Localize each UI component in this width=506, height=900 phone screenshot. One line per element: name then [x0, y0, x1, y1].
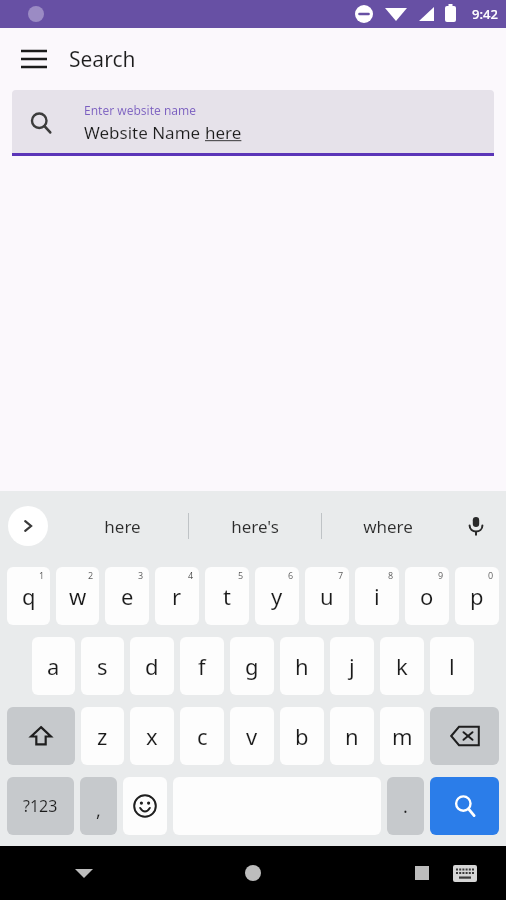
staticText: here's — [231, 515, 279, 538]
staticText: p — [470, 581, 484, 611]
button[interactable]: Search — [430, 777, 499, 835]
button[interactable]: ?123 — [7, 777, 74, 835]
button[interactable]: f — [180, 637, 224, 695]
staticText: g — [245, 651, 259, 681]
button[interactable]: u — [305, 567, 349, 625]
staticText: ?123 — [23, 795, 58, 817]
staticText: m — [392, 721, 413, 751]
staticText: 9:42 — [472, 5, 498, 23]
staticText: o — [420, 581, 434, 611]
staticText: 9 — [438, 569, 444, 581]
staticText: 6 — [288, 569, 294, 581]
staticText: w — [69, 581, 87, 611]
staticText: s — [97, 651, 108, 681]
button[interactable]: g — [230, 637, 274, 695]
button[interactable]: v — [230, 707, 274, 765]
staticText: z — [97, 721, 108, 751]
button[interactable]: q — [7, 567, 50, 625]
staticText: here — [104, 515, 141, 538]
button[interactable]: l — [430, 637, 474, 695]
staticText: i — [374, 581, 380, 611]
button[interactable]: , — [80, 777, 117, 835]
staticText: . — [403, 794, 408, 819]
button[interactable]: i — [355, 567, 399, 625]
button[interactable]: Voice input — [456, 506, 496, 546]
staticText: c — [197, 721, 208, 751]
staticText: 0 — [488, 569, 494, 581]
staticText: b — [295, 721, 309, 751]
staticText: u — [320, 581, 334, 611]
staticText: l — [449, 651, 455, 681]
button[interactable]: t — [205, 567, 249, 625]
staticText: t — [223, 581, 231, 611]
staticText: 4 — [188, 569, 194, 581]
staticText: j — [349, 651, 355, 681]
button[interactable]: r — [155, 567, 199, 625]
staticText: v — [246, 721, 258, 751]
staticText: 5 — [238, 569, 244, 581]
staticText: d — [145, 651, 159, 681]
staticText: 3 — [138, 569, 144, 581]
button[interactable]: Shift — [7, 707, 75, 765]
button[interactable]: Emoji — [123, 777, 167, 835]
button[interactable]: Backspace — [430, 707, 499, 765]
button[interactable]: p — [455, 567, 499, 625]
staticText: e — [121, 581, 134, 611]
button[interactable]: w — [56, 567, 99, 625]
button[interactable]: Enter website name — [12, 90, 494, 156]
button[interactable]: . — [387, 777, 424, 835]
button[interactable]: Home — [168, 846, 337, 900]
staticText: Search — [69, 45, 136, 74]
button[interactable]: d — [130, 637, 174, 695]
staticText: k — [396, 651, 408, 681]
staticText: x — [146, 721, 158, 751]
staticText: 1 — [39, 569, 45, 581]
staticText: q — [22, 581, 36, 611]
staticText: , — [96, 798, 101, 823]
button[interactable]: Menu — [10, 35, 58, 83]
staticText: where — [363, 515, 413, 538]
staticText: here — [205, 121, 242, 144]
button[interactable]: Keyboard — [450, 858, 480, 888]
button[interactable]: y — [255, 567, 299, 625]
staticText: Enter website name — [84, 102, 197, 118]
button[interactable]: k — [380, 637, 424, 695]
button[interactable]: More suggestions — [8, 506, 48, 546]
staticText: 2 — [88, 569, 94, 581]
staticText: n — [345, 721, 359, 751]
button[interactable]: n — [330, 707, 374, 765]
button[interactable]: a — [32, 637, 75, 695]
button[interactable]: z — [81, 707, 124, 765]
staticText: Website Name — [84, 121, 205, 144]
button[interactable]: h — [280, 637, 324, 695]
staticText: 7 — [338, 569, 344, 581]
button[interactable]: here — [56, 491, 188, 561]
button[interactable]: where — [322, 491, 454, 561]
button[interactable]: e — [105, 567, 149, 625]
button[interactable]: s — [81, 637, 124, 695]
button[interactable]: c — [180, 707, 224, 765]
button[interactable]: Recents — [337, 846, 506, 900]
staticText: a — [47, 651, 60, 681]
staticText: 8 — [388, 569, 394, 581]
staticText: f — [198, 651, 206, 681]
button[interactable]: here's — [189, 491, 321, 561]
button[interactable]: j — [330, 637, 374, 695]
button[interactable]: x — [130, 707, 174, 765]
button[interactable]: Back — [0, 846, 168, 900]
button[interactable]: o — [405, 567, 449, 625]
staticText: y — [271, 581, 283, 611]
staticText: h — [295, 651, 309, 681]
button[interactable]: m — [380, 707, 424, 765]
button[interactable]: b — [280, 707, 324, 765]
staticText: r — [172, 581, 182, 611]
